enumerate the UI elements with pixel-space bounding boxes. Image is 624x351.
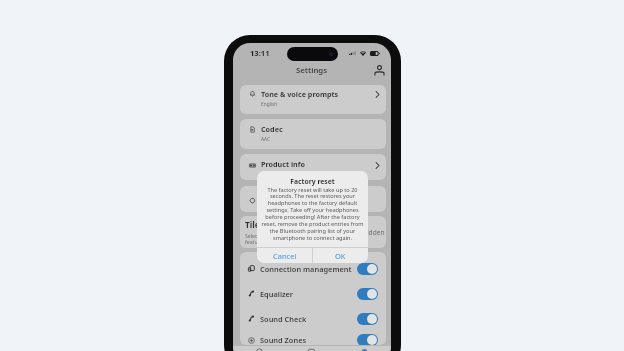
staticText: Tiles (245, 219, 265, 230)
button[interactable]: OK (313, 248, 368, 263)
staticText: Hidden (362, 228, 385, 237)
button[interactable]: Settings (338, 346, 391, 351)
button[interactable]: Sound Check (240, 306, 386, 331)
staticText: OK (335, 251, 346, 261)
button[interactable]: Tiles (240, 216, 386, 248)
staticText: Cancel (273, 251, 297, 261)
button[interactable]: Account (371, 61, 388, 78)
staticText: 13:11 (250, 48, 270, 58)
button[interactable]: Sound Zones (240, 331, 386, 345)
button[interactable]: Devices (233, 346, 285, 351)
staticText: Settings (296, 65, 328, 76)
staticText: AAC (261, 136, 271, 143)
staticText: English (261, 101, 278, 108)
staticText: Factory reset (261, 191, 309, 201)
staticText: Select which features are shown (245, 232, 292, 246)
button[interactable]: Connection management (240, 256, 386, 281)
button[interactable]: Cancel (257, 248, 312, 263)
button[interactable]: Factory reset (240, 186, 386, 212)
staticText: Equalizer (260, 289, 357, 299)
staticText: Sound Check (260, 314, 357, 324)
button[interactable]: Tone & voice prompts (240, 85, 386, 114)
staticText: Sound Zones (260, 335, 357, 345)
button[interactable]: Product info (240, 154, 386, 180)
button[interactable]: Codec (240, 119, 386, 149)
staticText: Tone & voice prompts (261, 89, 339, 99)
staticText: Codec (261, 124, 283, 134)
staticText: Connection management (260, 264, 357, 274)
staticText: Factory reset (257, 177, 368, 186)
button[interactable]: Equalizer (240, 281, 386, 306)
button[interactable]: Sound (285, 346, 338, 351)
staticText: Product info (261, 159, 306, 169)
staticText: The factory reset will take up to 20 sec… (261, 186, 364, 242)
